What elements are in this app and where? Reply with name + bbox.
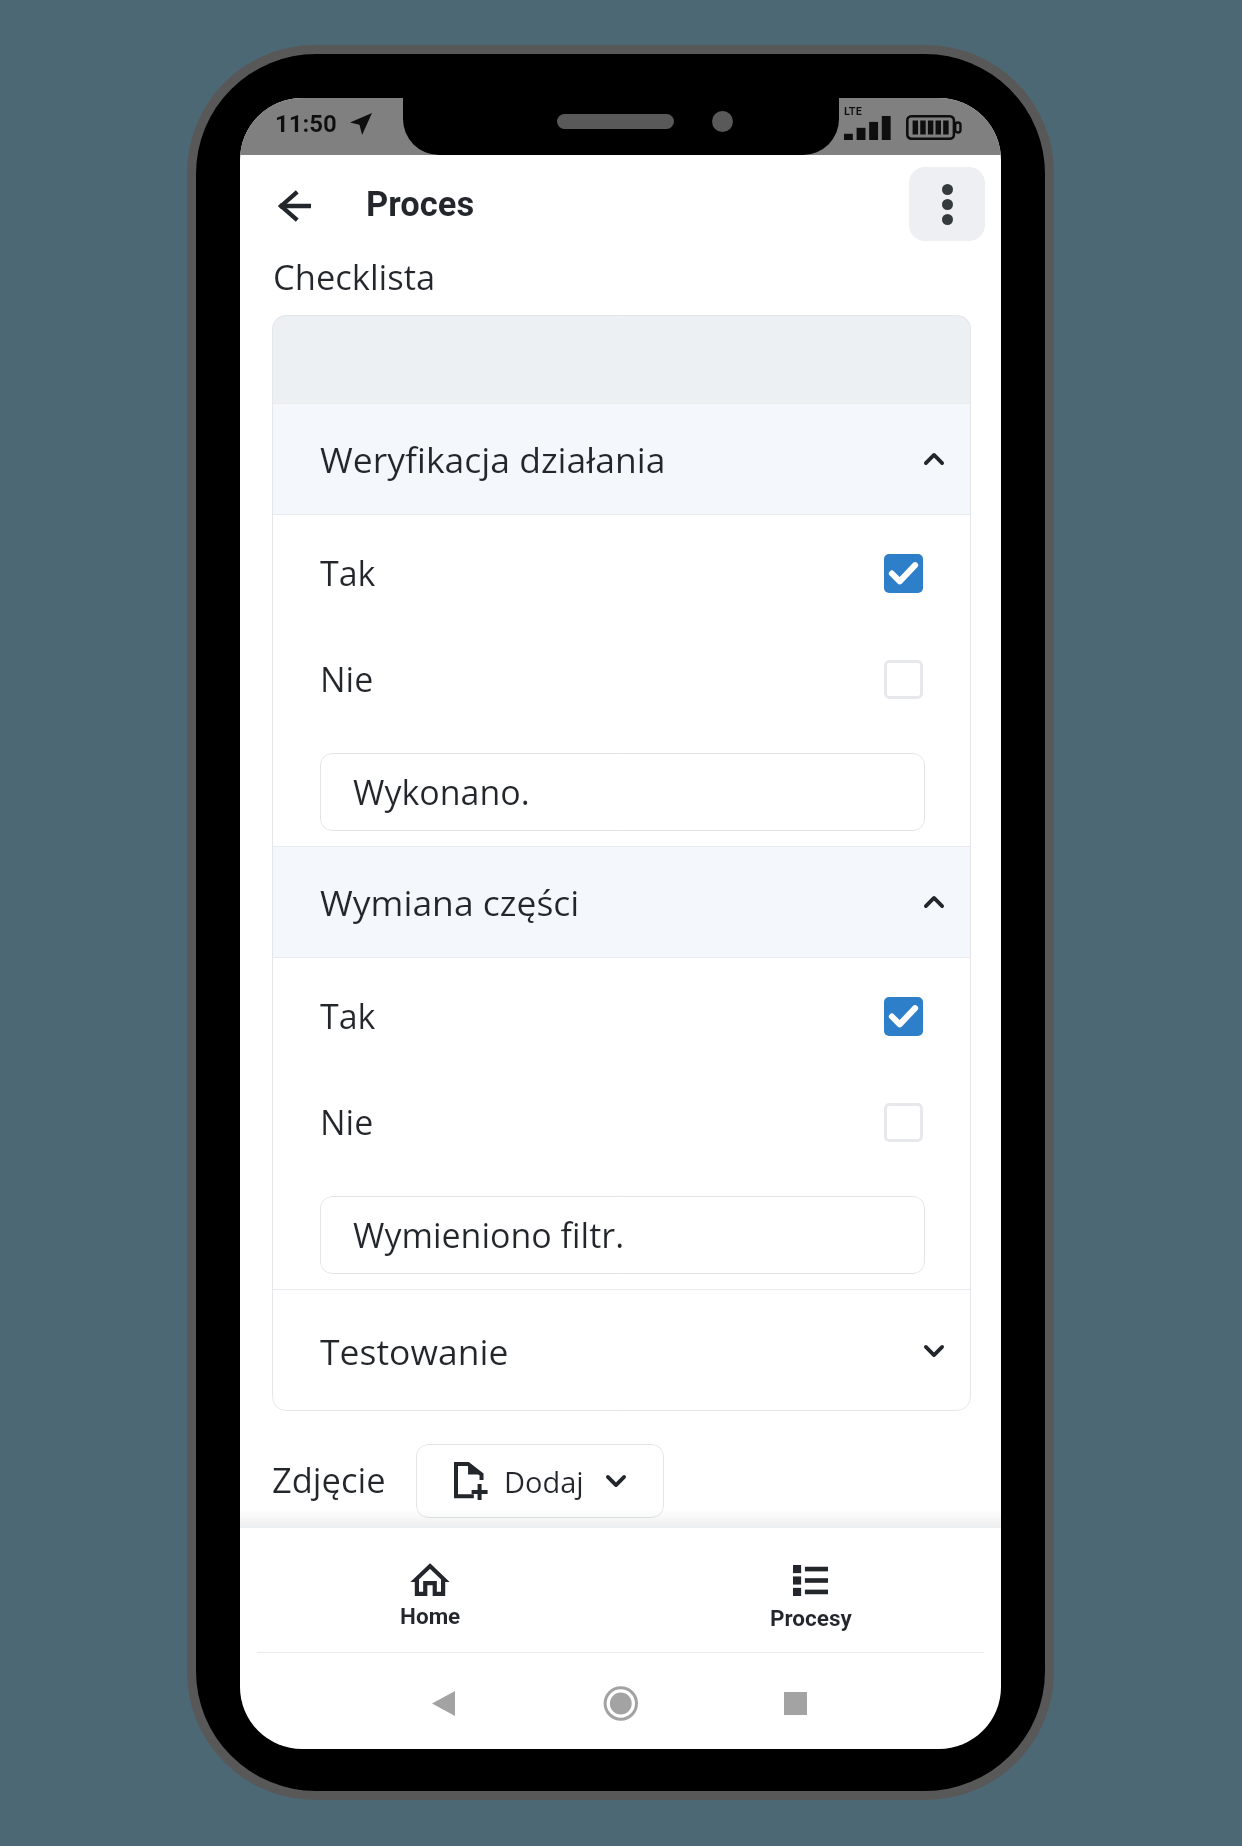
button[interactable]: More options [909,167,985,241]
button[interactable]: Wymiana części [272,847,971,957]
staticText: 11:50 [275,110,337,138]
staticText: Zdjęcie [272,1456,386,1503]
button[interactable]: Tak [272,520,971,626]
staticText: Wykonano. [353,769,530,815]
button[interactable]: Procesy [620,1528,1001,1652]
button[interactable]: Testowanie [272,1290,971,1411]
staticText: Checklista [273,253,436,300]
staticText: Dodaj [504,1462,584,1501]
staticText: Tak [320,993,884,1039]
staticText: Wymieniono filtr. [353,1212,625,1258]
staticText: Nie [320,1099,884,1145]
staticText: LTE [844,105,862,118]
button[interactable]: Back [267,179,323,233]
staticText: Testowanie [320,1327,924,1375]
staticText: Nie [320,656,884,702]
staticText: Weryfikacja działania [320,435,924,483]
button[interactable]: Nie [272,626,971,732]
staticText: Wymiana części [320,878,924,926]
button[interactable]: Dodaj [416,1444,664,1518]
button[interactable]: Tak [272,963,971,1069]
staticText: Tak [320,550,884,596]
button[interactable]: Wykonano. [320,753,925,831]
button[interactable]: Weryfikacja działania [272,404,971,514]
staticText: Home [400,1603,461,1629]
button[interactable]: Wymieniono filtr. [320,1196,925,1274]
staticText: Proces [366,184,475,224]
button[interactable]: Home [240,1528,620,1652]
button[interactable]: Nie [272,1069,971,1175]
staticText: Procesy [770,1605,852,1631]
